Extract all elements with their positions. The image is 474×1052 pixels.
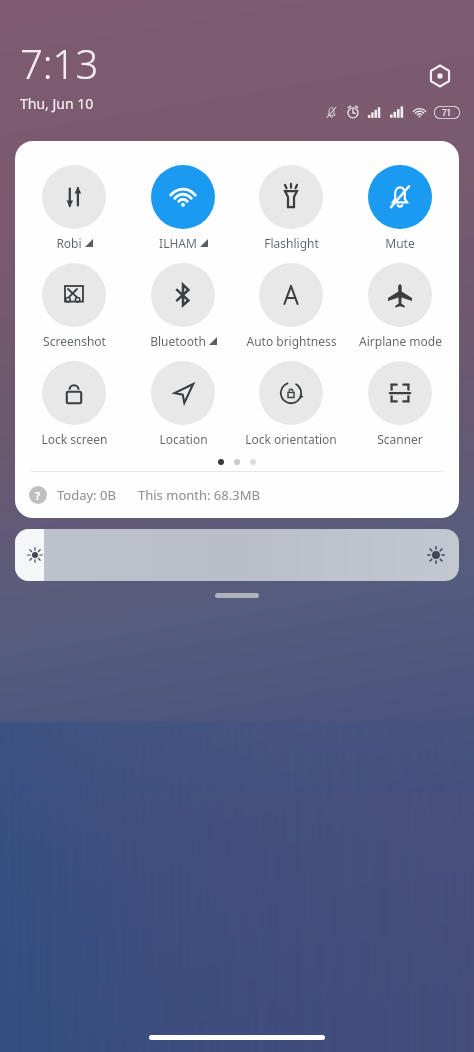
staticText: Lock screen	[41, 431, 108, 447]
staticText: Scanner	[377, 431, 423, 447]
button[interactable]: Lock screen	[21, 355, 127, 453]
button[interactable]: Bluetooth	[130, 257, 236, 355]
button[interactable]: Lock orientation	[238, 355, 344, 453]
staticText: Robi	[56, 235, 82, 251]
staticText: Today: 0B	[57, 486, 116, 504]
staticText: Lock orientation	[245, 431, 337, 447]
button[interactable]: Scanner	[347, 355, 453, 453]
staticText: Mute	[385, 235, 415, 251]
staticText: Airplane mode	[359, 333, 442, 349]
staticText: Auto brightness	[246, 333, 337, 349]
button[interactable]: Settings	[422, 58, 458, 94]
staticText: Thu, Jun 10	[20, 94, 94, 113]
staticText: This month: 68.3MB	[138, 486, 260, 504]
staticText: Bluetooth	[150, 333, 206, 349]
staticText: 7:13	[20, 36, 99, 90]
button[interactable]: Robi	[21, 159, 127, 257]
staticText: ?	[35, 488, 41, 503]
staticText: Screenshot	[43, 333, 106, 349]
button[interactable]: ?	[15, 472, 459, 518]
button[interactable]: Auto brightness	[238, 257, 344, 355]
button[interactable]: Brightness	[15, 529, 459, 581]
button[interactable]: Mute	[347, 159, 453, 257]
staticText: 71	[442, 107, 452, 118]
staticText: Flashlight	[264, 235, 319, 251]
button[interactable]: Airplane mode	[347, 257, 453, 355]
button[interactable]: ILHAM	[130, 159, 236, 257]
button[interactable]: Location	[130, 355, 236, 453]
button[interactable]: Flashlight	[238, 159, 344, 257]
button[interactable]: Screenshot	[21, 257, 127, 355]
staticText: ILHAM	[159, 235, 197, 251]
staticText: Location	[159, 431, 208, 447]
